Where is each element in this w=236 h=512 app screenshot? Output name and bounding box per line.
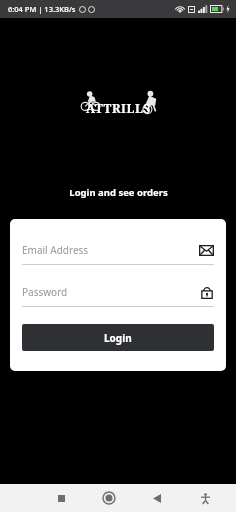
button[interactable]: Email Address <box>22 243 214 265</box>
button[interactable]: Login <box>22 324 214 351</box>
staticText: 6:04 PM | 13.3KB/s <box>8 4 76 14</box>
button[interactable]: Password <box>22 285 214 307</box>
staticText: Email Address <box>22 243 198 257</box>
staticText: Password <box>22 285 200 299</box>
other: Email <box>198 244 214 256</box>
staticText: Login <box>104 331 132 345</box>
button[interactable]: Back <box>144 485 170 511</box>
button[interactable]: Recent apps <box>48 485 74 511</box>
button[interactable]: Home <box>96 485 122 511</box>
staticText: Login and see orders <box>69 186 168 199</box>
button[interactable]: Accessibility <box>192 485 218 511</box>
staticText: ATTRILLS <box>86 100 151 116</box>
other: Password <box>200 285 214 299</box>
